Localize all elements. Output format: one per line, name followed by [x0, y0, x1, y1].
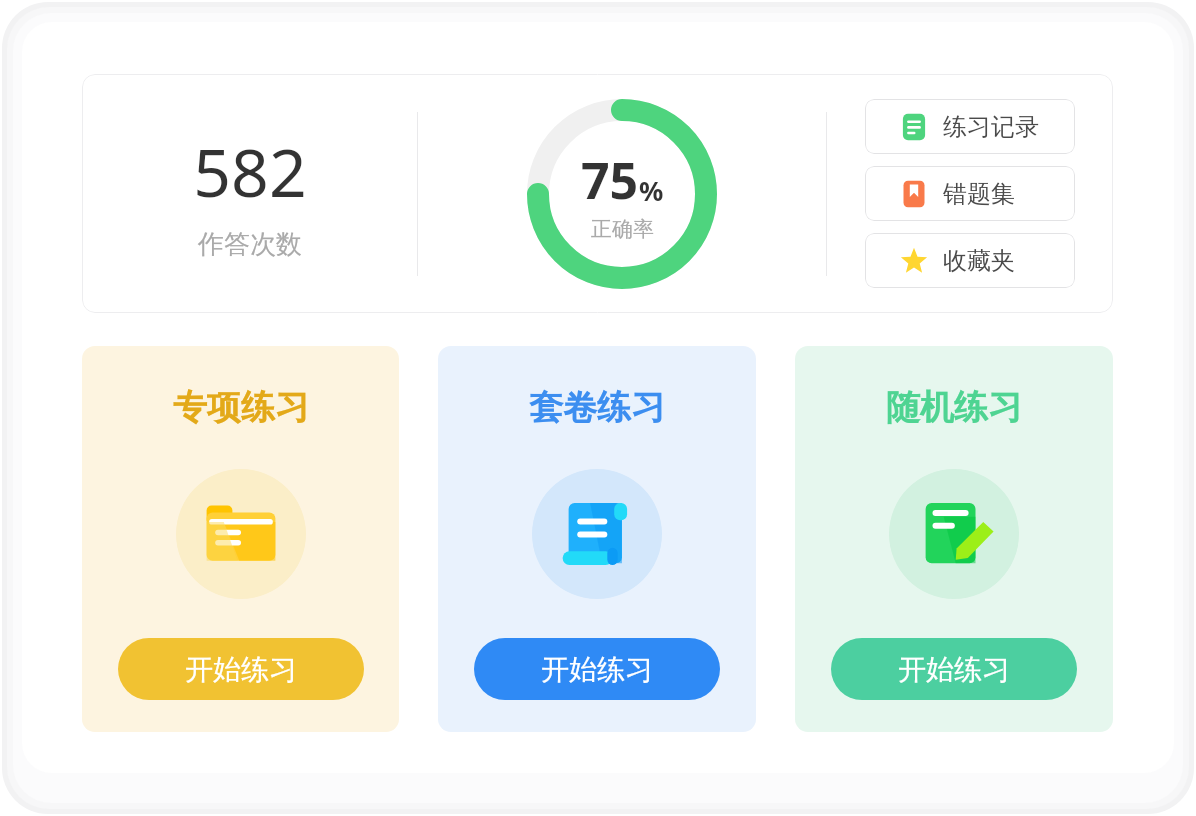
staticText: 收藏夹: [943, 246, 1015, 276]
staticText: %: [639, 172, 664, 209]
staticText: 练习记录: [943, 112, 1039, 142]
button[interactable]: 专项练习: [82, 346, 399, 732]
button[interactable]: 套卷练习: [438, 346, 756, 732]
staticText: 专项练习: [173, 386, 309, 429]
button[interactable]: 开始练习: [118, 638, 364, 700]
staticText: 错题集: [943, 179, 1015, 209]
staticText: 开始练习: [898, 652, 1010, 687]
button[interactable]: 开始练习: [474, 638, 720, 700]
button[interactable]: 开始练习: [831, 638, 1077, 700]
button[interactable]: 随机练习: [795, 346, 1113, 732]
staticText: 随机练习: [886, 386, 1022, 429]
staticText: 作答次数: [198, 228, 302, 261]
staticText: 75: [581, 146, 639, 214]
button[interactable]: 收藏夹: [865, 233, 1075, 288]
staticText: 开始练习: [541, 652, 653, 687]
button[interactable]: 错题集: [865, 166, 1075, 221]
staticText: 正确率: [591, 216, 654, 242]
staticText: 582: [193, 126, 307, 216]
staticText: 套卷练习: [529, 386, 665, 429]
staticText: 开始练习: [185, 652, 297, 687]
button[interactable]: 练习记录: [865, 99, 1075, 154]
